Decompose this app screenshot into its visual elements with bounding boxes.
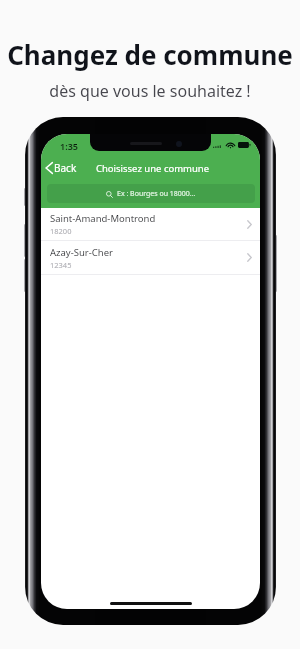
staticText: Choisissez une commune <box>43 162 260 175</box>
staticText: Ex : Bourges ou 18000... <box>117 189 196 199</box>
staticText: 18200 <box>50 226 72 236</box>
button[interactable]: Saint-Amand-Montrond <box>41 208 260 240</box>
staticText: Back <box>54 161 77 175</box>
button[interactable]: Back <box>43 158 79 178</box>
staticText: Azay-Sur-Cher <box>50 246 113 259</box>
staticText: 1:35 <box>60 140 78 152</box>
staticText: dès que vous le souhaitez ! <box>0 80 300 102</box>
staticText: Changez de commune <box>0 37 300 72</box>
button[interactable]: Azay-Sur-Cher <box>41 241 260 274</box>
button[interactable]: Ex : Bourges ou 18000... <box>47 184 255 203</box>
staticText: 12345 <box>50 260 72 270</box>
staticText: Saint-Amand-Montrond <box>50 212 156 225</box>
